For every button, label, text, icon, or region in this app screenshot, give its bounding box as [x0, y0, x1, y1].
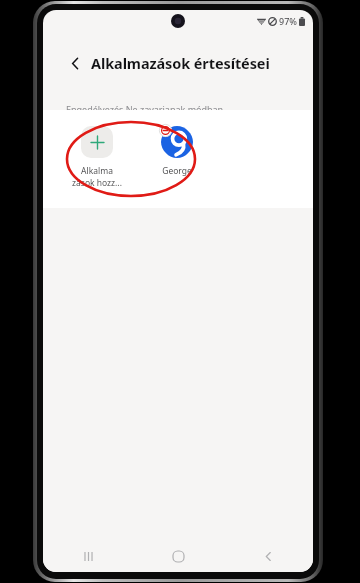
- button[interactable]: Alkalmazások hozzáadása: [69, 126, 125, 189]
- staticText: Engedélyezés Ne zavarjanak módban: [66, 103, 224, 115]
- button[interactable]: Vissza: [62, 50, 88, 76]
- staticText: Alkalmazások értesítései: [91, 53, 270, 73]
- button[interactable]: Legutóbbiak: [43, 540, 133, 572]
- button[interactable]: Vissza: [223, 540, 313, 572]
- staticText: Alkalma: [81, 165, 113, 177]
- staticText: George: [162, 165, 192, 177]
- button[interactable]: Kezdőlap: [133, 540, 223, 572]
- staticText: 97%: [279, 15, 297, 27]
- staticText: zások hozz...: [72, 177, 122, 189]
- button[interactable]: George: [149, 126, 205, 177]
